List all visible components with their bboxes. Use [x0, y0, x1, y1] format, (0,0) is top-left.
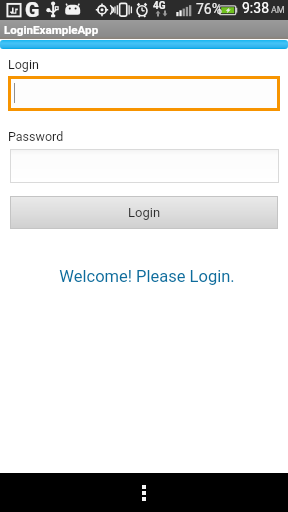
- staticText: Welcome! Please Login.: [3, 267, 288, 286]
- staticText: 4G: [153, 0, 166, 12]
- staticText: Login: [8, 57, 39, 72]
- staticText: AM: [271, 5, 285, 16]
- staticText: 9:38: [242, 0, 269, 16]
- staticText: LoginExampleApp: [4, 23, 99, 37]
- staticText: Login: [128, 205, 161, 220]
- staticText: G: [25, 0, 40, 18]
- staticText: 76%: [196, 1, 222, 17]
- button[interactable]: Login: [10, 196, 278, 229]
- staticText: Password: [8, 129, 64, 144]
- button[interactable]: More options: [124, 475, 164, 511]
- button[interactable]: [8, 76, 280, 111]
- button[interactable]: [10, 149, 279, 183]
